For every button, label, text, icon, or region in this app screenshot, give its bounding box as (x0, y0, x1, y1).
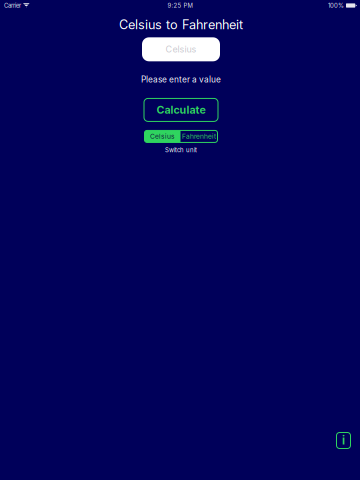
button[interactable]: Celsius (144, 130, 180, 142)
staticText: Celsius (165, 44, 196, 55)
staticText: Carrier (4, 2, 21, 9)
staticText: Switch unit (165, 146, 197, 154)
staticText: Calculate (156, 103, 205, 116)
staticText: i (342, 434, 345, 447)
button[interactable]: Info (336, 432, 351, 449)
button[interactable]: Calculate (144, 98, 218, 121)
staticText: Please enter a value (141, 74, 221, 84)
staticText: Celsius to Fahrenheit (119, 17, 243, 32)
staticText: 100% (328, 2, 344, 9)
button[interactable]: Fahrenheit (180, 130, 217, 142)
staticText: Celsius (150, 132, 175, 140)
staticText: 9:25 PM (167, 2, 192, 9)
staticText: Fahrenheit (182, 132, 216, 140)
